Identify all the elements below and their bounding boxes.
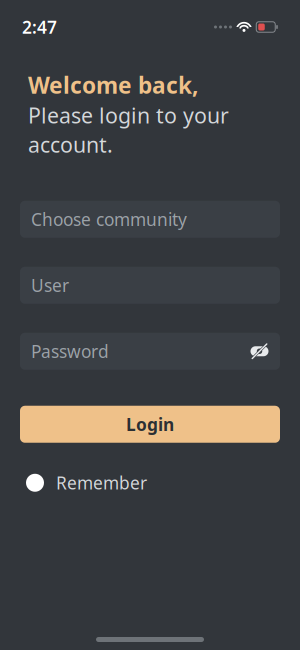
- staticText: User: [31, 274, 69, 297]
- button[interactable]: Remember: [0, 469, 300, 497]
- staticText: Please login to your: [28, 101, 229, 129]
- button[interactable]: Login: [20, 406, 280, 443]
- staticText: Remember: [56, 471, 147, 494]
- staticText: Login: [126, 413, 174, 436]
- button[interactable]: User: [20, 267, 280, 304]
- button[interactable]: Choose community: [20, 201, 280, 238]
- staticText: Choose community: [31, 208, 187, 231]
- staticText: account.: [28, 130, 113, 159]
- button[interactable]: Show password: [250, 342, 269, 361]
- staticText: Password: [31, 340, 109, 363]
- staticText: 2:47: [22, 15, 57, 38]
- staticText: Welcome back,: [28, 70, 198, 100]
